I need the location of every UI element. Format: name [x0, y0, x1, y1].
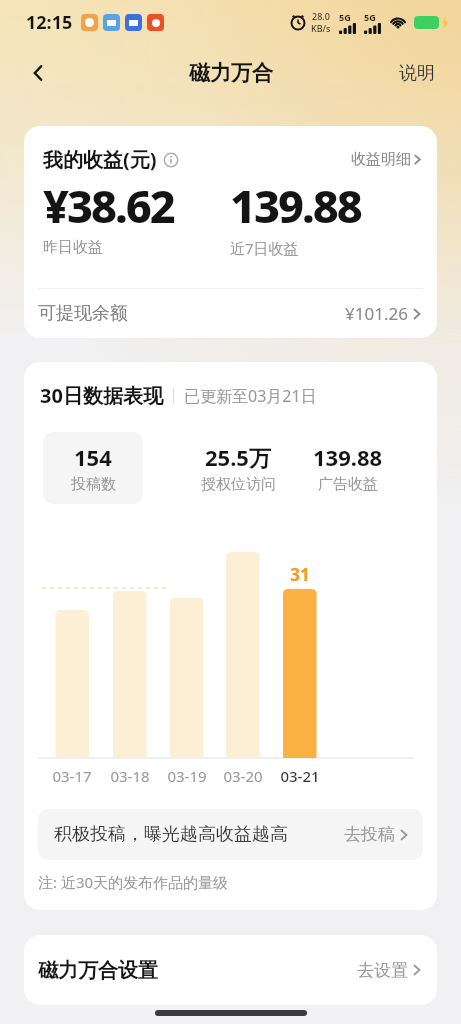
button[interactable]: 154 — [43, 432, 143, 504]
staticText: 投稿数 — [71, 475, 116, 494]
staticText: 28.0 — [312, 10, 330, 22]
staticText: 昨日收益 — [43, 238, 103, 257]
staticText: 去投稿 — [344, 824, 395, 845]
staticText: 03-18 — [102, 766, 158, 786]
staticText: 近7日收益 — [230, 238, 299, 258]
staticText: KB/s — [311, 22, 331, 34]
staticText: 授权位访问 — [201, 475, 276, 494]
staticText: 去设置 — [357, 960, 408, 981]
staticText: 收益明细 — [351, 150, 411, 169]
staticText: 注: 近30天的发布作品的量级 — [38, 872, 229, 892]
staticText: ¥38.62 — [43, 175, 174, 236]
staticText: 31 — [272, 563, 328, 586]
staticText: 03-20 — [215, 766, 271, 786]
staticText: 03-21 — [272, 766, 328, 786]
staticText: 5G — [339, 11, 351, 23]
button[interactable]: 可提现余额 — [24, 289, 437, 338]
staticText: 30日数据表现 — [40, 382, 163, 409]
staticText: 我的收益(元) — [43, 146, 157, 173]
button[interactable]: 磁力万合设置 — [24, 935, 437, 1005]
staticText: 磁力万合设置 — [38, 958, 158, 983]
staticText: 139.88 — [230, 175, 361, 236]
staticText: ¥101.26 — [345, 302, 408, 325]
staticText: 说明 — [399, 62, 435, 85]
staticText: 磁力万合 — [189, 60, 273, 86]
staticText: 已更新至03月21日 — [184, 385, 317, 407]
button[interactable]: 收益明细 — [351, 150, 424, 169]
button[interactable] — [20, 55, 56, 91]
button[interactable]: 说明 — [399, 62, 435, 85]
staticText: 139.88 — [313, 442, 383, 472]
staticText: 5G — [364, 11, 376, 23]
staticText: 154 — [74, 442, 112, 472]
staticText: 广告收益 — [318, 475, 378, 494]
staticText: 03-19 — [159, 766, 215, 786]
staticText: 25.5万 — [205, 442, 271, 472]
button[interactable]: 积极投稿，曝光越高收益越高 — [38, 809, 423, 860]
staticText: 积极投稿，曝光越高收益越高 — [54, 823, 288, 846]
staticText: 03-17 — [44, 766, 100, 786]
staticText: 12:15 — [26, 10, 73, 35]
staticText: 可提现余额 — [38, 302, 128, 325]
